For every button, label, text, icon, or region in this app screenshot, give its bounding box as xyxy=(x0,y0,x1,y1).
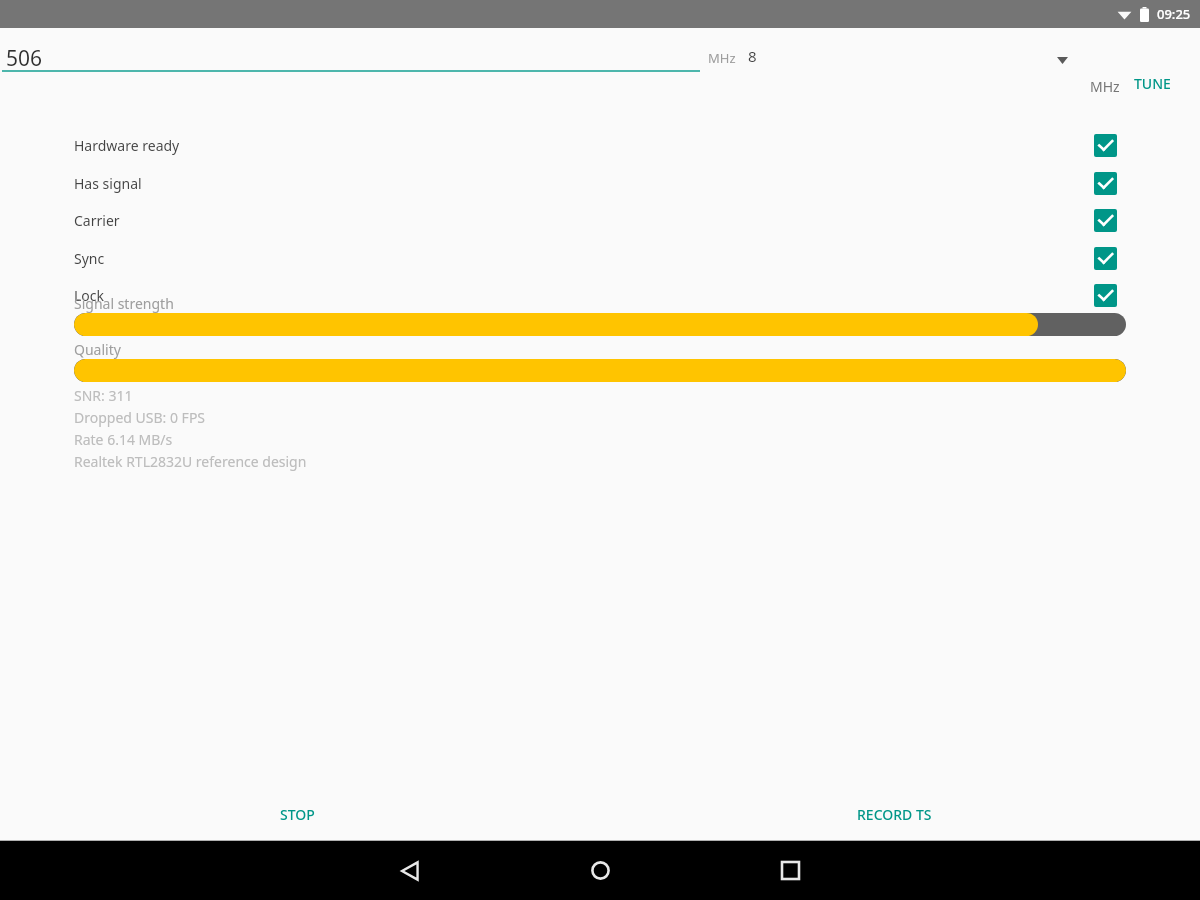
staticText: STOP xyxy=(280,805,315,824)
button[interactable]: TUNE xyxy=(1130,70,1175,97)
staticText: Has signal xyxy=(74,174,142,193)
staticText: 506 xyxy=(6,44,43,73)
staticText: Lock xyxy=(74,286,105,305)
staticText: Dropped USB: 0 FPS xyxy=(74,408,206,427)
button[interactable]: Has signal xyxy=(0,165,1200,202)
staticText: RECORD TS xyxy=(857,805,932,824)
button[interactable]: STOP xyxy=(268,796,327,833)
button[interactable]: Select bandwidth xyxy=(1040,38,1084,82)
button[interactable]: Home xyxy=(570,841,630,900)
staticText: Quality xyxy=(74,340,121,359)
button[interactable]: Lock xyxy=(0,277,1200,314)
button[interactable]: Back xyxy=(380,841,440,900)
staticText: SNR: 311 xyxy=(74,386,133,405)
button[interactable]: Recent apps xyxy=(760,841,820,900)
button[interactable]: Sync xyxy=(0,240,1200,277)
staticText: Realtek RTL2832U reference design xyxy=(74,452,307,471)
staticText: MHz xyxy=(1090,77,1120,96)
button[interactable]: Hardware ready xyxy=(0,127,1200,164)
staticText: Carrier xyxy=(74,211,120,230)
staticText: 09:25 xyxy=(1157,5,1191,23)
staticText: Sync xyxy=(74,249,105,268)
staticText: MHz xyxy=(708,49,736,67)
button[interactable]: 506 xyxy=(0,28,1200,90)
button[interactable]: RECORD TS xyxy=(845,796,944,833)
staticText: Signal strength xyxy=(74,294,174,313)
staticText: 8 xyxy=(748,46,757,66)
staticText: Rate 6.14 MB/s xyxy=(74,430,173,449)
staticText: Hardware ready xyxy=(74,136,180,155)
staticText: TUNE xyxy=(1134,74,1171,93)
button[interactable]: Carrier xyxy=(0,202,1200,239)
